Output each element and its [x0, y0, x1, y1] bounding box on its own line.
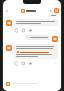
button[interactable] [14, 44, 58, 59]
button[interactable]: Like [28, 28, 33, 33]
button[interactable]: Copy [21, 61, 26, 66]
button[interactable] [25, 35, 50, 40]
button[interactable]: More options [53, 61, 58, 66]
button[interactable] [49, 14, 58, 17]
button[interactable]: Back [5, 9, 9, 13]
button[interactable] [14, 19, 58, 26]
button[interactable]: Regenerate [14, 28, 19, 33]
button[interactable]: New chat [48, 9, 52, 13]
button[interactable]: Like [28, 61, 33, 66]
button[interactable]: Regenerate [14, 61, 19, 66]
button[interactable]: More options [53, 28, 58, 33]
button[interactable]: Copy [21, 28, 26, 33]
button[interactable]: Menu [54, 8, 59, 13]
